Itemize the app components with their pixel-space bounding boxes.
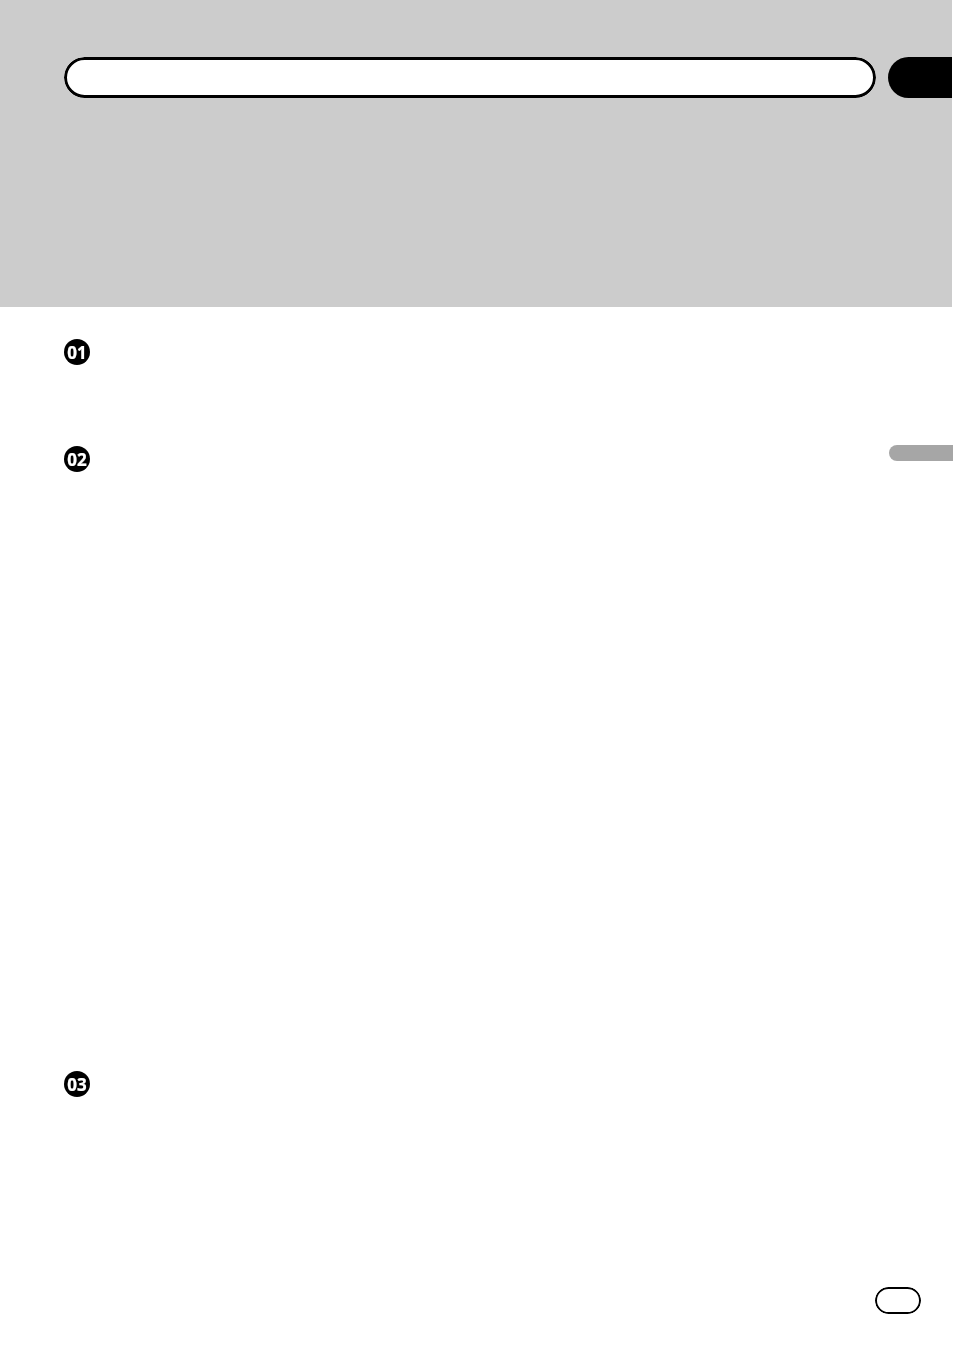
button[interactable]: Page number <box>875 1287 921 1314</box>
staticText: 03 <box>67 1073 87 1096</box>
button[interactable]: 03 <box>64 1071 90 1097</box>
button[interactable]: 02 <box>64 446 90 472</box>
staticText: 02 <box>67 448 87 471</box>
button[interactable]: Section tab <box>889 445 953 461</box>
button[interactable]: Chapter tab <box>888 57 952 98</box>
staticText: 01 <box>67 341 87 364</box>
button[interactable]: Title field <box>64 57 876 98</box>
button[interactable]: 01 <box>64 339 90 365</box>
